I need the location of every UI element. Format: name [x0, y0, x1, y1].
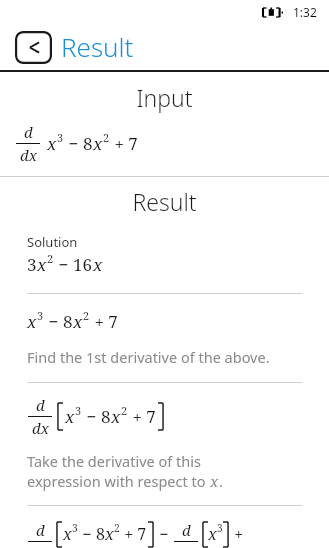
- staticText: + 7: [110, 132, 138, 155]
- staticText: Result: [61, 29, 134, 64]
- staticText: Find the 1st derivative of the above.: [27, 347, 270, 367]
- staticText: 2: [103, 130, 110, 145]
- staticText: 2: [114, 521, 120, 535]
- staticText: 8: [63, 310, 73, 333]
- button[interactable]: x: [0, 294, 329, 383]
- staticText: x: [210, 471, 219, 491]
- staticText: x: [208, 523, 217, 545]
- staticText: d: [36, 395, 45, 415]
- staticText: x: [93, 253, 103, 276]
- staticText: Input: [0, 82, 329, 113]
- staticText: d: [36, 520, 45, 540]
- staticText: −: [54, 253, 73, 276]
- staticText: Take the derivative of this: [27, 451, 201, 471]
- staticText: x: [93, 132, 103, 155]
- staticText: .: [219, 471, 223, 491]
- staticText: 3: [72, 521, 78, 535]
- staticText: −: [78, 523, 96, 545]
- staticText: 3: [217, 521, 223, 535]
- staticText: −: [64, 132, 83, 155]
- staticText: 1:32: [293, 4, 317, 20]
- staticText: x: [73, 310, 83, 333]
- staticText: dx: [32, 418, 49, 438]
- staticText: −: [82, 405, 101, 428]
- staticText: 2: [83, 308, 90, 323]
- staticText: x: [65, 405, 75, 428]
- staticText: x: [105, 523, 114, 545]
- staticText: 8: [96, 523, 105, 545]
- button[interactable]: Solution: [0, 233, 329, 294]
- staticText: +: [230, 523, 244, 545]
- staticText: 3: [57, 130, 64, 145]
- button[interactable]: d: [0, 383, 329, 506]
- staticText: d: [182, 520, 191, 540]
- staticText: + 7: [128, 405, 156, 428]
- staticText: d: [24, 122, 33, 142]
- staticText: −: [44, 310, 63, 333]
- staticText: x: [111, 405, 121, 428]
- staticText: expression with respect to: [27, 471, 210, 491]
- button[interactable]: d: [0, 506, 329, 548]
- staticText: + 7: [90, 310, 118, 333]
- staticText: Solution: [27, 233, 78, 251]
- staticText: 16: [73, 253, 93, 276]
- staticText: dx: [20, 145, 37, 165]
- staticText: 3: [75, 403, 82, 418]
- staticText: 8: [101, 405, 111, 428]
- staticText: x: [47, 132, 57, 155]
- staticText: 3: [37, 308, 44, 323]
- staticText: 2: [47, 251, 54, 266]
- staticText: x: [27, 310, 37, 333]
- staticText: 8: [83, 132, 93, 155]
- staticText: 2: [121, 403, 128, 418]
- staticText: 3: [27, 253, 37, 276]
- staticText: + 7: [120, 523, 147, 545]
- staticText: x: [63, 523, 72, 545]
- button[interactable]: Back: [15, 31, 52, 64]
- staticText: x: [37, 253, 47, 276]
- staticText: −: [155, 523, 173, 545]
- staticText: Result: [0, 186, 329, 217]
